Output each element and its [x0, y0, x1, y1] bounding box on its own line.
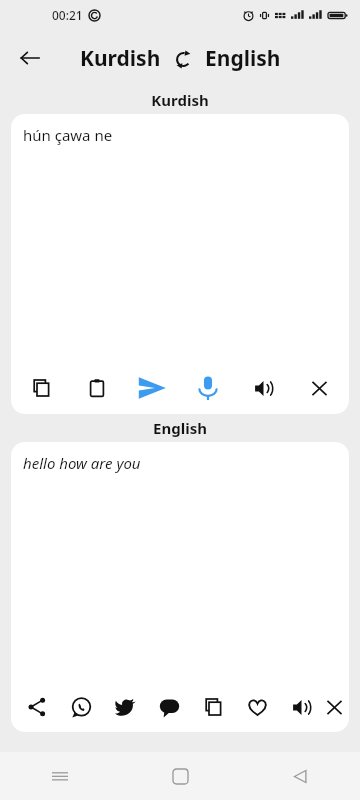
button[interactable]: Share on Twitter: [103, 685, 147, 729]
button[interactable]: Back: [240, 752, 360, 800]
staticText: 00:21: [52, 7, 83, 23]
button[interactable]: Home: [120, 752, 240, 800]
button[interactable]: Send as SMS: [147, 685, 191, 729]
button[interactable]: Speak: [241, 366, 285, 410]
button[interactable]: Back: [8, 36, 52, 80]
button[interactable]: hello how are you: [23, 453, 141, 473]
button[interactable]: hún çawa ne: [23, 125, 113, 145]
button[interactable]: Speak: [279, 685, 323, 729]
staticText: Kurdish: [151, 90, 209, 110]
button[interactable]: Translate: [130, 366, 174, 410]
button[interactable]: Share: [15, 685, 59, 729]
button[interactable]: Recent apps: [0, 752, 120, 800]
button[interactable]: Copy: [191, 685, 235, 729]
button[interactable]: Clear: [297, 366, 341, 410]
button[interactable]: Swap languages: [170, 46, 196, 72]
button[interactable]: Kurdish: [80, 44, 161, 73]
staticText: English: [153, 418, 207, 438]
button[interactable]: English: [205, 44, 281, 73]
button[interactable]: Copy: [19, 366, 63, 410]
button[interactable]: Clear: [323, 685, 345, 729]
button[interactable]: Paste: [75, 366, 119, 410]
button[interactable]: Share on WhatsApp: [59, 685, 103, 729]
button[interactable]: Favourite: [235, 685, 279, 729]
button[interactable]: Voice input: [186, 366, 230, 410]
